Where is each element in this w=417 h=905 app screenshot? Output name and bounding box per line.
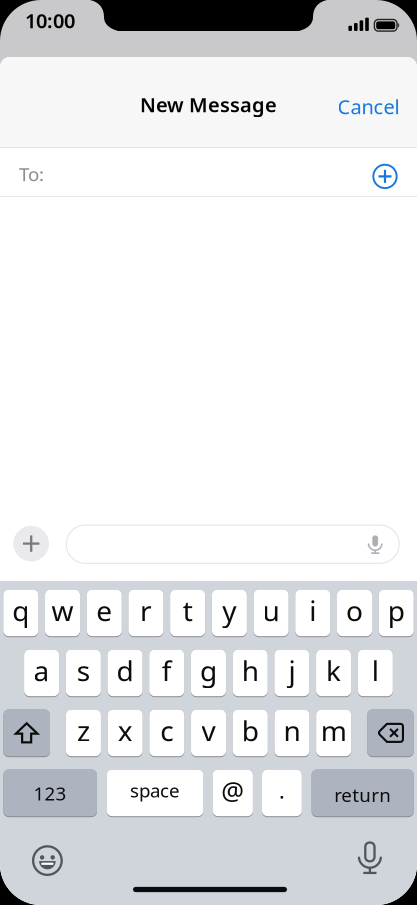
button[interactable]: return <box>312 769 414 817</box>
staticText: d <box>116 652 133 689</box>
button[interactable]: o <box>337 589 372 637</box>
staticText: x <box>118 712 133 749</box>
button[interactable]: l <box>358 649 393 697</box>
staticText: @ <box>221 773 244 807</box>
button[interactable]: Cancel <box>337 93 399 120</box>
button[interactable]: k <box>316 649 351 697</box>
button[interactable]: r <box>128 589 163 637</box>
button[interactable]: Add Contact <box>370 161 400 191</box>
staticText: z <box>77 712 90 749</box>
staticText: s <box>77 652 90 689</box>
button[interactable]: space <box>107 769 203 817</box>
staticText: New Message <box>140 91 277 118</box>
staticText: w <box>51 592 73 629</box>
button[interactable]: v <box>191 709 226 757</box>
staticText: l <box>372 652 379 689</box>
button[interactable]: Shift <box>3 709 50 757</box>
button[interactable]: d <box>107 649 142 697</box>
staticText: f <box>162 652 172 689</box>
staticText: r <box>140 592 152 629</box>
button[interactable]: To <box>0 148 417 196</box>
staticText: k <box>326 652 341 689</box>
button[interactable]: f <box>149 649 184 697</box>
button[interactable]: b <box>233 709 268 757</box>
button[interactable]: s <box>66 649 101 697</box>
staticText: To: <box>19 162 44 186</box>
button[interactable]: h <box>233 649 268 697</box>
button[interactable]: Emoji <box>31 845 63 877</box>
button[interactable]: q <box>3 589 38 637</box>
button[interactable]: e <box>87 589 122 637</box>
button[interactable]: j <box>274 649 309 697</box>
button[interactable]: i <box>295 589 330 637</box>
staticText: j <box>288 652 295 689</box>
staticText: g <box>200 652 217 689</box>
staticText: c <box>160 712 173 749</box>
staticText: e <box>96 592 112 629</box>
staticText: n <box>283 712 300 749</box>
button[interactable]: . <box>262 769 302 817</box>
button[interactable]: @ <box>213 769 253 817</box>
button[interactable]: g <box>191 649 226 697</box>
staticText: . <box>279 776 285 804</box>
staticText: v <box>202 712 216 749</box>
button[interactable]: p <box>379 589 414 637</box>
button[interactable]: 123 <box>3 769 97 817</box>
button[interactable]: c <box>149 709 184 757</box>
button[interactable]: z <box>66 709 101 757</box>
button[interactable]: Apps <box>13 526 49 562</box>
button[interactable]: x <box>108 709 143 757</box>
staticText: b <box>242 712 259 749</box>
button[interactable]: u <box>254 589 289 637</box>
staticText: q <box>12 592 29 629</box>
staticText: Cancel <box>337 93 399 120</box>
staticText: 10:00 <box>25 7 75 34</box>
staticText: a <box>34 652 50 689</box>
button[interactable]: n <box>274 709 309 757</box>
button[interactable]: Delete <box>367 709 414 757</box>
button[interactable]: Dictation <box>353 841 387 875</box>
staticText: o <box>346 592 363 629</box>
button[interactable]: y <box>212 589 247 637</box>
button[interactable]: w <box>45 589 80 637</box>
staticText: space <box>130 778 180 803</box>
button[interactable]: a <box>24 649 59 697</box>
staticText: u <box>263 592 280 629</box>
staticText: y <box>222 592 236 629</box>
button[interactable]: Message text field <box>66 525 399 563</box>
staticText: return <box>334 782 391 807</box>
staticText: m <box>321 712 347 749</box>
staticText: i <box>309 592 316 629</box>
staticText: h <box>242 652 259 689</box>
button[interactable]: t <box>170 589 205 637</box>
button[interactable]: m <box>316 709 351 757</box>
staticText: t <box>183 592 193 629</box>
staticText: 123 <box>34 781 67 806</box>
staticText: p <box>388 592 405 629</box>
